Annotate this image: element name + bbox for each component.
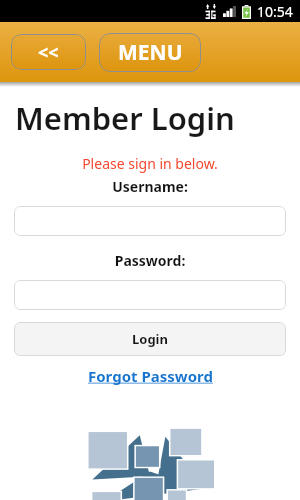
button[interactable]: Login	[14, 322, 286, 356]
staticText: Member Login	[15, 97, 235, 139]
staticText: 10:54	[257, 2, 293, 21]
staticText: <<	[38, 40, 59, 65]
button[interactable]: Back	[11, 34, 86, 70]
staticText: Password:	[0, 251, 300, 270]
staticText: Login	[132, 330, 168, 348]
button[interactable]: Forgot Password	[86, 364, 215, 388]
staticText: Username:	[0, 177, 300, 196]
staticText: Please sign in below.	[0, 154, 300, 173]
staticText: MENU	[118, 38, 183, 67]
button[interactable]: MENU	[99, 33, 201, 72]
button[interactable]: Password	[14, 280, 286, 310]
button[interactable]: Username	[14, 206, 286, 236]
